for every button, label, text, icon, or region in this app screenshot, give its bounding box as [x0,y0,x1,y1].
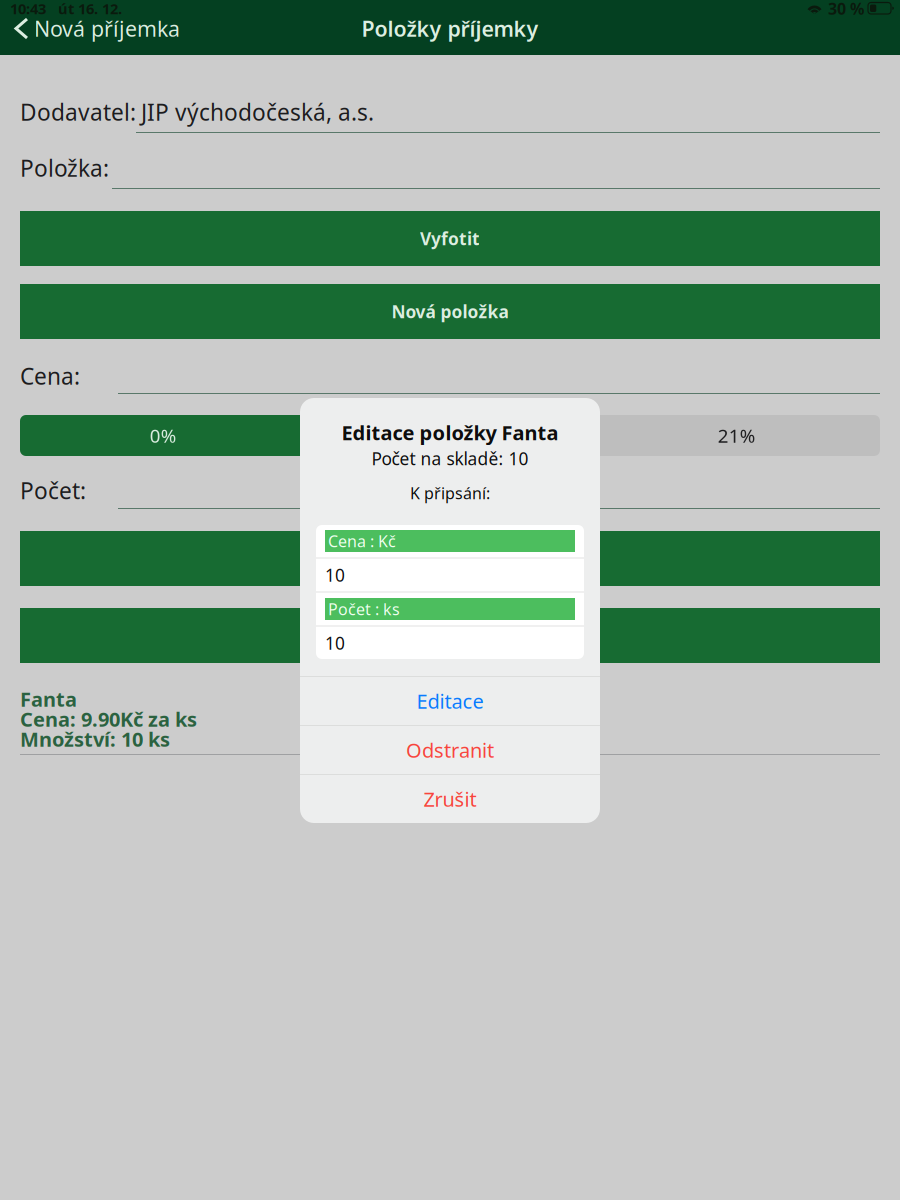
staticText: Nová položka [391,300,508,323]
button[interactable]: Uložit [0,531,900,586]
staticText: Nová příjemka [34,14,180,43]
staticText: Cena: 9.90Kč za ks [20,706,197,732]
staticText: Položka: [20,153,109,183]
staticText: Cena : Kč [328,530,396,552]
button[interactable]: Editace [300,676,600,725]
staticText: Položky příjemky [361,14,538,43]
staticText: Počet : ks [328,598,400,620]
staticText: 15% [431,423,469,448]
staticText: Počet na skladě: 10 [371,447,528,470]
button[interactable]: Nová položka [0,284,900,339]
staticText: Dokončit [410,624,489,647]
staticText: 30 % [828,0,864,19]
staticText: Dodavatel: [20,97,136,127]
staticText: 0% [150,423,177,448]
button[interactable]: Odstranit [300,725,600,774]
staticText: 21% [718,423,756,448]
staticText: Editace [416,688,483,714]
staticText: Zrušit [423,786,476,812]
button[interactable]: Nová příjemka [0,11,900,46]
button[interactable]: Fanta [0,689,900,755]
staticText: Vyfotit [420,227,480,250]
button[interactable]: Zrušit [300,774,600,823]
staticText: Fanta [20,686,77,712]
staticText: Editace položky Fanta [341,419,558,446]
staticText: JIP východočeská, a.s. [141,97,374,127]
button[interactable]: 0% [20,415,307,456]
staticText: Odstranit [406,737,494,763]
staticText: K připsání: [410,482,490,504]
staticText: 10:43 út 16. 12. [10,0,122,18]
staticText: Množství: 10 ks [20,726,170,752]
button[interactable]: Dokončit [0,608,900,663]
button[interactable]: 15% [307,415,593,456]
staticText: Cena: [20,361,80,391]
staticText: 10 [325,631,345,654]
staticText: Počet: [20,475,86,505]
staticText: Uložit [424,547,475,570]
staticText: 10 [325,563,345,586]
button[interactable]: Vyfotit [0,211,900,266]
button[interactable]: 21% [593,415,880,456]
